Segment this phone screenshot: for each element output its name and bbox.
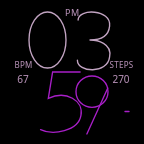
staticText: BPM xyxy=(14,59,33,70)
staticText: 67 xyxy=(17,72,29,86)
button[interactable]: Heart rate 67 BPM xyxy=(9,59,37,85)
button[interactable]: Steps 270 xyxy=(104,59,138,85)
staticText: STEPS xyxy=(109,59,134,70)
button[interactable]: PM xyxy=(65,6,80,18)
staticText: 270 xyxy=(112,72,130,86)
staticText: PM xyxy=(65,6,80,18)
